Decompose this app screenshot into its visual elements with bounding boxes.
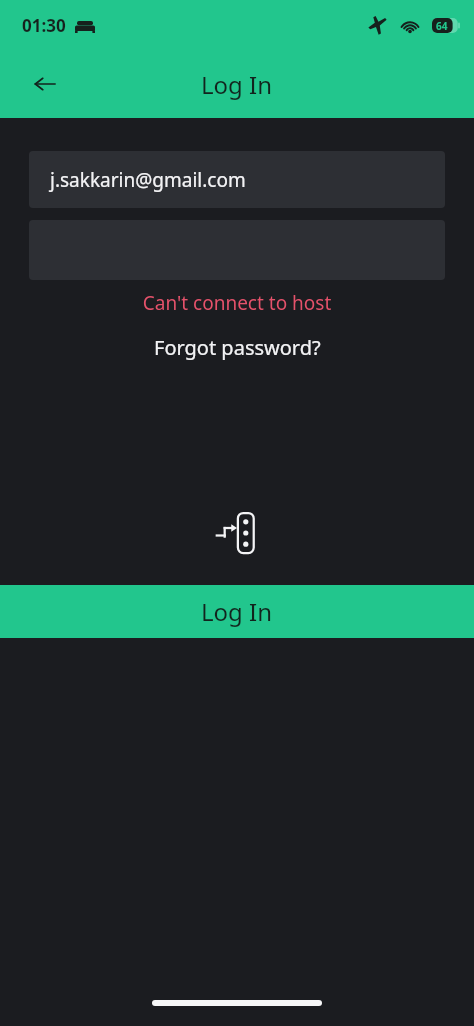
staticText: Forgot password? bbox=[154, 334, 321, 361]
staticText: 01:30 bbox=[22, 14, 66, 37]
button[interactable]: Log In bbox=[0, 585, 474, 638]
staticText: j.sakkarin@gmail.com bbox=[50, 167, 246, 193]
staticText: Log In bbox=[201, 595, 273, 628]
button[interactable]: j.sakkarin@gmail.com bbox=[29, 151, 445, 208]
staticText: Log In bbox=[201, 68, 273, 101]
button[interactable]: Back bbox=[24, 63, 66, 105]
staticText: 64 bbox=[436, 19, 448, 33]
staticText: Can't connect to host bbox=[0, 290, 474, 316]
button[interactable]: Forgot password? bbox=[144, 332, 331, 363]
